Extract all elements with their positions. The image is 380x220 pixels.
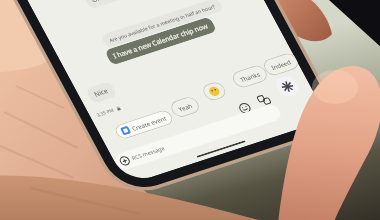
staticText: Create event [128,102,170,144]
button[interactable]: Nice [80,72,122,112]
staticText: Are you available for a meeting in half … [106,0,219,79]
staticText: Yeah [175,97,195,117]
staticText: On this number [87,0,140,19]
button[interactable]: Emoji [233,97,256,119]
button[interactable]: Gallery [253,89,275,111]
button[interactable]: RCS message [108,47,288,220]
button[interactable]: Are you available for a meeting in half … [96,0,228,88]
button[interactable]: Smiley reaction [195,73,233,109]
button[interactable]: I have a new Calendar chip now [100,0,222,102]
staticText: Indeed [267,51,295,77]
button[interactable]: On this number [78,0,150,28]
button[interactable]: AI suggestions [267,68,308,105]
staticText: RCS message [128,133,169,173]
staticText: 3:35 PM [94,101,118,125]
staticText: I have a new Calendar chip now [109,0,212,92]
button[interactable]: Thanks [225,52,275,101]
staticText: Thanks [236,63,263,90]
button[interactable]: Yeah [163,86,207,128]
staticText: Nice [90,82,113,103]
button[interactable]: Indeed [256,41,305,88]
button[interactable]: Create event [108,90,179,159]
